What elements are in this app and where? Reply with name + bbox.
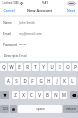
staticText: M — [62, 92, 66, 98]
staticText: Z — [14, 92, 17, 98]
staticText: E — [18, 64, 21, 70]
button[interactable]: I — [56, 63, 63, 71]
button[interactable]: Description — [3, 50, 75, 61]
button[interactable]: Next — [67, 8, 75, 13]
button[interactable]: L — [69, 77, 76, 85]
button[interactable]: R — [24, 63, 31, 71]
staticText: K — [63, 78, 66, 84]
staticText: R — [26, 64, 29, 70]
button[interactable]: return — [63, 105, 78, 113]
staticText: I — [59, 64, 61, 70]
button[interactable]: Q — [0, 63, 7, 71]
button[interactable]: Y — [40, 63, 47, 71]
staticText: Cancel — [3, 8, 15, 13]
staticText: C — [30, 92, 33, 98]
button[interactable]: 123 — [0, 105, 9, 113]
staticText: G — [39, 78, 43, 84]
button[interactable]: H — [45, 77, 52, 85]
staticText: 9:41 — [42, 1, 48, 5]
button[interactable]: S — [13, 77, 20, 85]
staticText: Email — [19, 54, 27, 58]
staticText: return — [66, 107, 76, 111]
button[interactable]: E — [16, 63, 23, 71]
button[interactable]: C — [28, 91, 35, 99]
staticText: •••••• — [19, 43, 26, 47]
button[interactable]: B — [44, 91, 51, 99]
button[interactable]: G — [37, 77, 44, 85]
button[interactable]: T — [32, 63, 39, 71]
button[interactable]: Name — [3, 17, 75, 28]
staticText: Password — [3, 43, 17, 47]
button[interactable]: V — [36, 91, 43, 99]
staticText: D — [23, 78, 27, 84]
staticText: H — [47, 78, 51, 84]
staticText: N — [54, 92, 58, 98]
staticText: P — [74, 64, 77, 70]
button[interactable]: A — [5, 77, 12, 85]
staticText: 123 — [2, 107, 8, 111]
button[interactable]: U — [48, 63, 55, 71]
staticText: X — [22, 92, 25, 98]
button[interactable]: D — [21, 77, 28, 85]
staticText: U — [50, 64, 54, 70]
button[interactable]: M — [60, 91, 67, 99]
button[interactable]: Shift — [0, 91, 9, 99]
button[interactable]: O — [64, 63, 71, 71]
staticText: V — [38, 92, 41, 98]
staticText: Description — [3, 54, 19, 58]
button[interactable]: Z — [12, 91, 19, 99]
staticText: W — [9, 64, 14, 70]
staticText: S — [15, 78, 18, 84]
staticText: L — [71, 78, 74, 84]
button[interactable]: Emoji — [10, 105, 17, 113]
staticText: Locked SIM — [2, 1, 19, 5]
staticText: Email — [3, 32, 11, 36]
button[interactable]: space — [18, 105, 62, 113]
staticText: Next — [67, 8, 75, 13]
staticText: O — [66, 64, 70, 70]
button[interactable]: Password — [3, 39, 75, 50]
button[interactable]: Backspace — [70, 91, 78, 99]
staticText: my@email.com — [19, 32, 42, 36]
staticText: New Account — [27, 8, 52, 13]
button[interactable]: Email — [3, 28, 75, 39]
button[interactable]: N — [52, 91, 59, 99]
button[interactable]: P — [72, 63, 78, 71]
staticText: space — [36, 107, 45, 111]
staticText: John Smith — [19, 21, 35, 25]
button[interactable]: J — [53, 77, 60, 85]
staticText: A — [7, 78, 10, 84]
button[interactable]: F — [29, 77, 36, 85]
button[interactable]: K — [61, 77, 68, 85]
staticText: Y — [42, 64, 45, 70]
staticText: Q — [2, 64, 6, 70]
button[interactable]: W — [8, 63, 15, 71]
button[interactable]: Cancel — [3, 8, 15, 13]
staticText: Name — [3, 21, 12, 25]
staticText: T — [34, 64, 37, 70]
staticText: F — [31, 78, 34, 84]
staticText: J — [56, 78, 58, 84]
button[interactable]: X — [20, 91, 27, 99]
staticText: B — [46, 92, 49, 98]
